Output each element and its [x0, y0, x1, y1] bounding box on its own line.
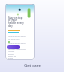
staticText: Lorem ipsum dolor sit amet con sectetur … — [8, 42, 27, 51]
staticText: Stay on top of your health every day — [8, 16, 25, 28]
staticText: Lorem ipsum dolor sit amet — [8, 50, 19, 59]
button[interactable] — [7, 45, 20, 49]
staticText: Lorem ipsum dolor sit amet con — [8, 35, 27, 40]
staticText: Get care — [24, 63, 41, 69]
